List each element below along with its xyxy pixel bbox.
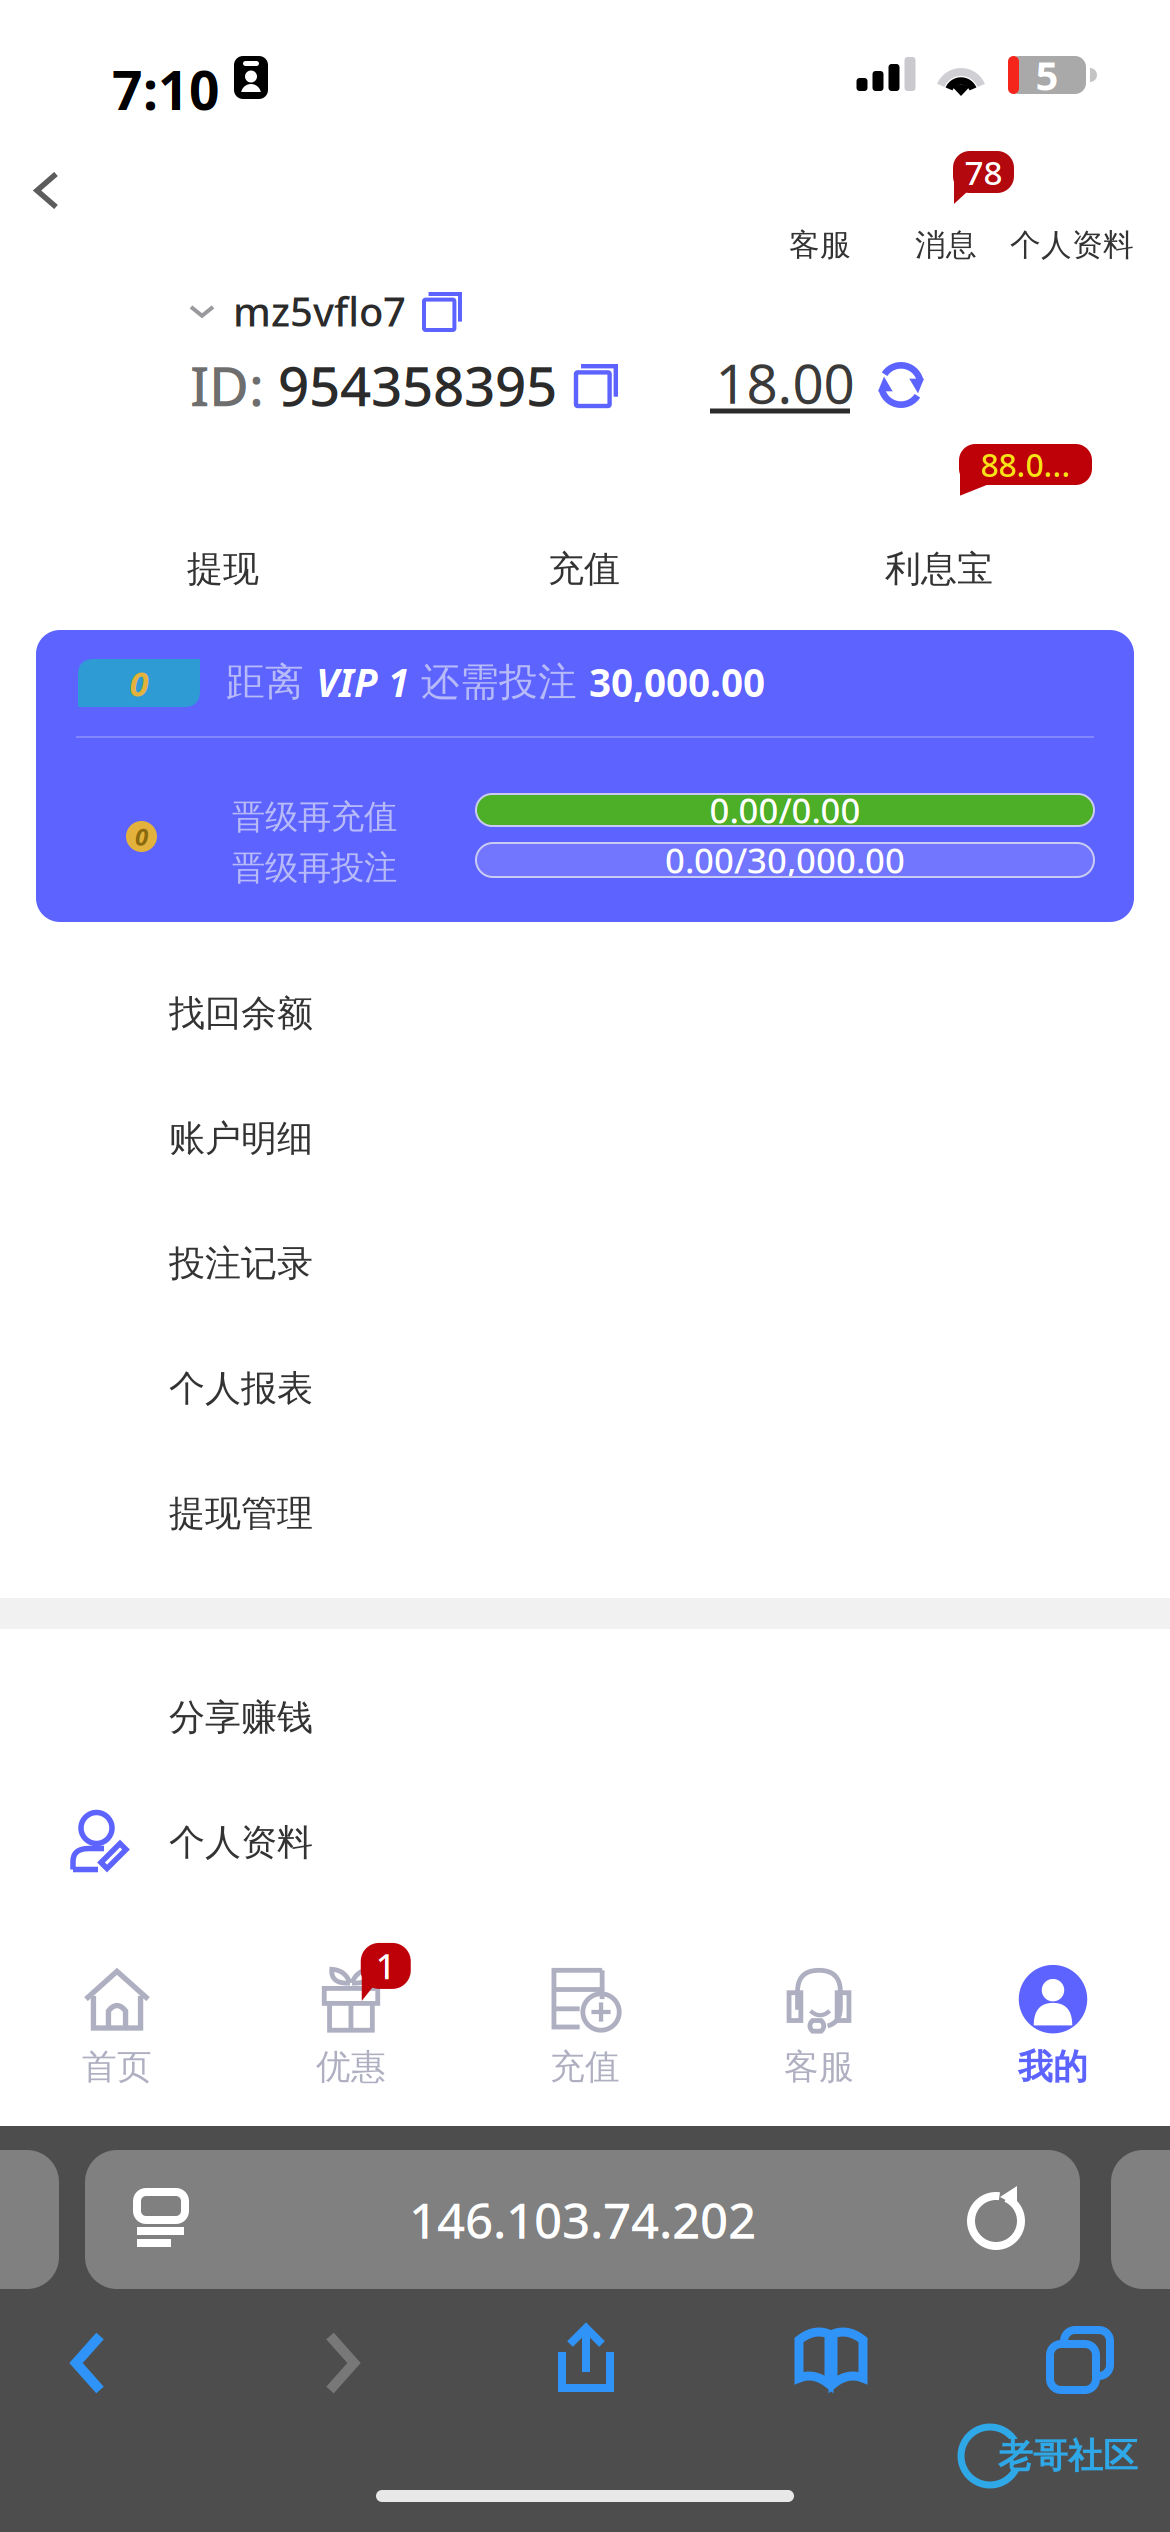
staticText: 消息	[915, 226, 977, 264]
button[interactable]: mz5vflo7	[190, 282, 462, 340]
staticText: 个人报表	[169, 1366, 313, 1411]
staticText: 分享赚钱	[169, 1695, 313, 1740]
staticText: 距离	[226, 658, 316, 706]
staticText: 1	[376, 1942, 396, 1989]
button[interactable]: 消息	[891, 209, 1001, 281]
staticText: 0.00/0.00	[709, 786, 860, 834]
button[interactable]: 客服	[765, 209, 875, 281]
staticText: 18.00	[715, 345, 854, 420]
staticText: 我的	[1018, 2045, 1088, 2089]
staticText: 找回余额	[169, 991, 313, 1036]
staticText: 7:10	[112, 53, 220, 126]
button[interactable]: 首页	[0, 1956, 234, 2096]
button[interactable]: 账户明细	[0, 1076, 1170, 1201]
staticText: 晋级再投注	[232, 847, 397, 889]
button[interactable]: Tabs	[1016, 2296, 1144, 2424]
staticText: 0	[135, 820, 148, 853]
button[interactable]: Page settings	[111, 2166, 211, 2273]
staticText: 充值	[548, 546, 620, 592]
staticText: 客服	[789, 226, 851, 264]
staticText: mz5vflo7	[233, 284, 406, 338]
button[interactable]: 分享赚钱	[0, 1655, 1170, 1780]
button[interactable]: 提现	[73, 529, 373, 609]
staticText: ID:	[190, 348, 278, 422]
staticText: 146.103.74.202	[409, 2186, 756, 2253]
staticText: 5	[1035, 48, 1058, 102]
staticText: 30,000.00	[589, 656, 765, 708]
staticText: 78	[964, 149, 1002, 195]
button[interactable]: 充值	[434, 529, 734, 609]
button[interactable]: 投注记录	[0, 1201, 1170, 1326]
button[interactable]: 提现管理	[0, 1451, 1170, 1576]
button[interactable]: 找回余额	[0, 951, 1170, 1076]
staticText: 还需投注	[409, 658, 589, 706]
button[interactable]: Share	[524, 2292, 648, 2424]
staticText: 客服	[784, 2045, 854, 2089]
staticText: 优惠	[316, 2045, 386, 2089]
button[interactable]: 个人资料	[0, 1780, 1170, 1905]
button[interactable]: Back	[7, 144, 86, 237]
staticText: 0	[129, 659, 148, 707]
button[interactable]: 客服	[702, 1956, 936, 2096]
button[interactable]: 个人资料	[1004, 209, 1140, 281]
staticText: 个人资料	[1010, 226, 1134, 264]
button[interactable]: 18.00	[710, 352, 924, 418]
button[interactable]: Back	[36, 2298, 140, 2428]
button[interactable]: 充值	[468, 1956, 702, 2096]
button[interactable]: ID:	[190, 352, 618, 418]
button[interactable]: Reload	[943, 2165, 1053, 2277]
staticText: 个人资料	[169, 1820, 313, 1865]
staticText: 954358395	[278, 348, 557, 422]
staticText: 88.0...	[980, 443, 1070, 486]
staticText: 首页	[82, 2045, 152, 2089]
staticText: 提现管理	[169, 1491, 313, 1536]
button[interactable]: 1	[234, 1956, 468, 2096]
staticText: 0.00/30,000.00	[665, 836, 905, 884]
button[interactable]: 个人报表	[0, 1326, 1170, 1451]
button[interactable]: Bookmarks	[763, 2294, 899, 2420]
button[interactable]: Forward	[290, 2298, 394, 2428]
staticText: 充值	[550, 2045, 620, 2089]
staticText: 投注记录	[169, 1241, 313, 1286]
staticText: 账户明细	[169, 1116, 313, 1161]
staticText: VIP 1	[316, 656, 409, 708]
staticText: 老哥社区	[998, 2434, 1138, 2478]
staticText: 晋级再充值	[232, 796, 397, 838]
staticText: 利息宝	[885, 546, 993, 592]
staticText: 提现	[187, 546, 259, 592]
button[interactable]: 利息宝	[789, 529, 1089, 609]
button[interactable]: 我的	[936, 1956, 1170, 2096]
